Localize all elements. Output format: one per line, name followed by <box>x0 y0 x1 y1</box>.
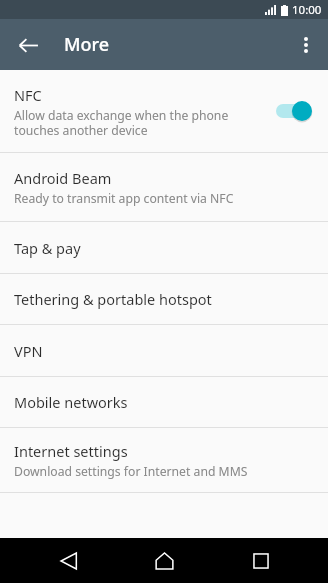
button[interactable]: VPN <box>0 325 328 376</box>
button[interactable]: Back <box>8 25 48 65</box>
staticText: Internet settings <box>14 441 128 461</box>
button[interactable]: Recent apps <box>232 538 290 583</box>
button[interactable]: More options <box>286 25 326 65</box>
button[interactable]: Tap & pay <box>0 222 328 273</box>
button[interactable]: Home <box>135 538 193 583</box>
button[interactable]: Back <box>39 538 97 583</box>
button[interactable]: Tethering & portable hotspot <box>0 274 328 324</box>
staticText: Mobile networks <box>14 392 128 412</box>
staticText: Android Beam <box>14 168 112 188</box>
staticText: 10:00 <box>292 2 322 18</box>
staticText: Ready to transmit app content via NFC <box>14 190 234 207</box>
staticText: Tap & pay <box>14 238 81 258</box>
button[interactable]: Internet settings <box>0 428 328 492</box>
staticText: More <box>64 32 110 57</box>
button[interactable]: NFC <box>0 70 328 152</box>
button[interactable]: Toggle NFC <box>272 96 316 126</box>
button[interactable]: Mobile networks <box>0 377 328 427</box>
button[interactable]: Android Beam <box>0 153 328 221</box>
staticText: Download settings for Internet and MMS <box>14 463 248 480</box>
staticText: VPN <box>14 341 43 361</box>
staticText: NFC <box>14 85 42 105</box>
staticText: Allow data exchange when the phone touch… <box>14 107 229 138</box>
staticText: Tethering & portable hotspot <box>14 289 212 309</box>
